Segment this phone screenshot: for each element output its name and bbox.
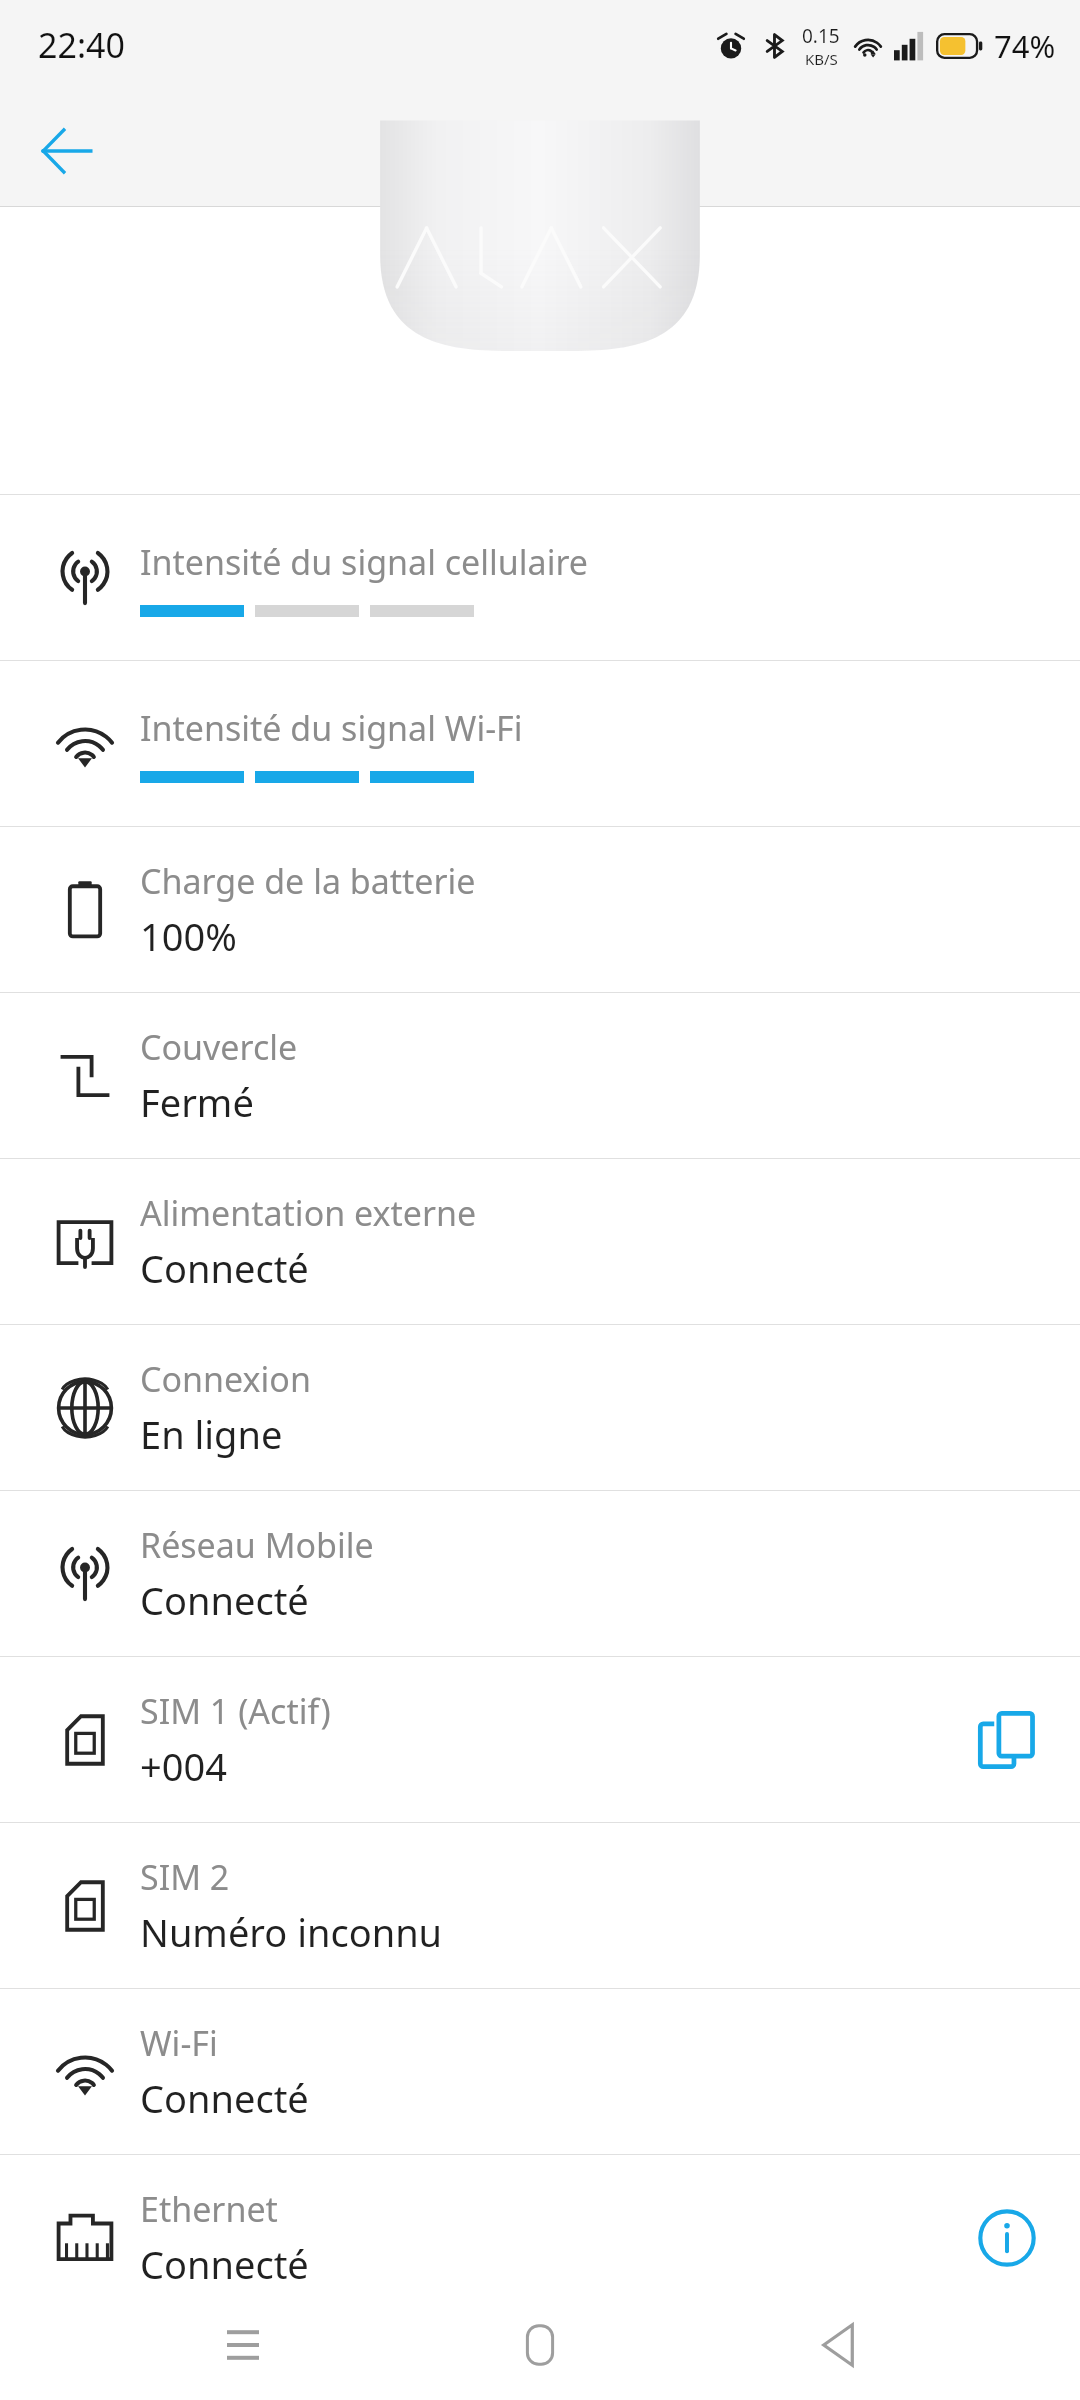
button[interactable]: Recent apps (188, 2290, 298, 2400)
staticText: Wi-Fi (140, 2020, 218, 2066)
button[interactable]: Home (485, 2290, 595, 2400)
button[interactable]: Connexion (0, 1325, 1080, 1490)
button[interactable]: Wi-Fi (0, 1989, 1080, 2154)
button[interactable]: Back (24, 109, 108, 193)
staticText: Connecté (140, 2072, 309, 2124)
staticText: Fermé (140, 1076, 254, 1128)
button[interactable]: Couvercle (0, 993, 1080, 1158)
button[interactable]: Alimentation externe (0, 1159, 1080, 1324)
staticText: Numéro inconnu (140, 1906, 443, 1958)
button[interactable]: Charge de la batterie (0, 827, 1080, 992)
staticText: Réseau Mobile (140, 1522, 374, 1568)
staticText: KB/S (805, 49, 838, 69)
button[interactable]: Intensité du signal Wi-Fi (0, 661, 1080, 826)
staticText: Connecté (140, 2238, 309, 2290)
button[interactable]: Back (783, 2290, 893, 2400)
staticText: Intensité du signal Wi-Fi (140, 705, 523, 751)
staticText: Connecté (140, 1242, 309, 1294)
staticText: +004 (140, 1740, 227, 1792)
staticText: 100% (140, 910, 237, 962)
button[interactable]: SIM 1 (Actif) (0, 1657, 1080, 1822)
staticText: SIM 1 (Actif) (140, 1688, 331, 1734)
button[interactable]: Réseau Mobile (0, 1491, 1080, 1656)
staticText: Couvercle (140, 1024, 298, 1070)
staticText: 22:40 (38, 22, 125, 68)
staticText: En ligne (140, 1408, 283, 1460)
button[interactable]: SIM 2 (0, 1823, 1080, 1988)
button[interactable]: Ethernet (0, 2155, 1080, 2320)
staticText: 74% (994, 25, 1056, 67)
staticText: Ethernet (140, 2186, 278, 2232)
staticText: Intensité du signal cellulaire (140, 539, 588, 585)
staticText: Connexion (140, 1356, 311, 1402)
staticText: SIM 2 (140, 1854, 230, 1900)
staticText: 0.15 (802, 23, 840, 49)
button[interactable]: Intensité du signal cellulaire (0, 495, 1080, 660)
staticText: Connecté (140, 1574, 309, 1626)
button[interactable]: Information (964, 2195, 1050, 2281)
staticText: Alimentation externe (140, 1190, 477, 1236)
button[interactable]: Copy number (964, 1697, 1050, 1783)
staticText: Charge de la batterie (140, 858, 476, 904)
